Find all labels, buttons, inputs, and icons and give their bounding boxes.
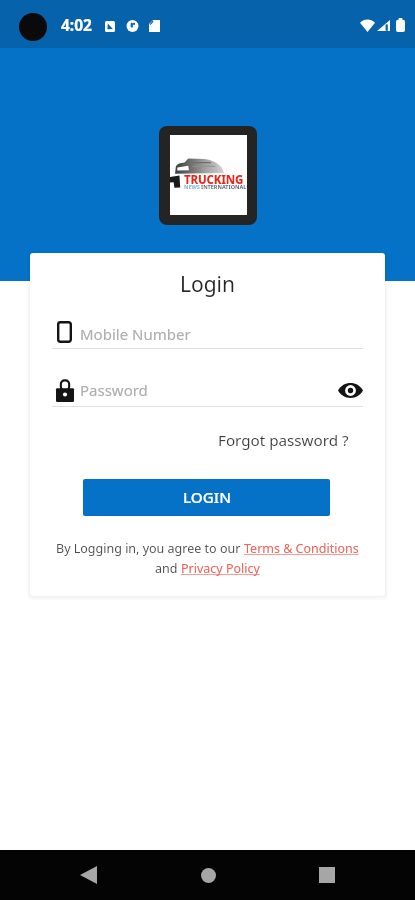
staticText: Password	[80, 380, 148, 400]
staticText: TRUCKING	[184, 172, 244, 188]
button[interactable]: Home	[184, 851, 232, 899]
staticText: Mobile Number	[80, 324, 191, 344]
button[interactable]: Mobile Number	[52, 317, 363, 349]
staticText: 4:02	[61, 14, 92, 35]
staticText: LOGIN	[183, 487, 231, 508]
button[interactable]: Terms & Conditions	[244, 540, 359, 557]
staticText: INTERNATIONAL	[201, 183, 247, 190]
button[interactable]: LOGIN	[83, 479, 330, 516]
button[interactable]: Back	[64, 851, 112, 899]
button[interactable]: Recents	[303, 851, 351, 899]
button[interactable]: Show password	[332, 378, 368, 402]
button[interactable]: Privacy Policy	[181, 560, 260, 577]
staticText: Login	[30, 270, 385, 299]
staticText: By Logging in, you agree to our	[56, 540, 244, 557]
staticText: Forgot password ?	[218, 430, 349, 451]
staticText: and	[155, 560, 181, 577]
button[interactable]: Forgot password ?	[212, 424, 355, 457]
button[interactable]: Password	[52, 376, 324, 408]
staticText: NEWS	[184, 183, 200, 190]
